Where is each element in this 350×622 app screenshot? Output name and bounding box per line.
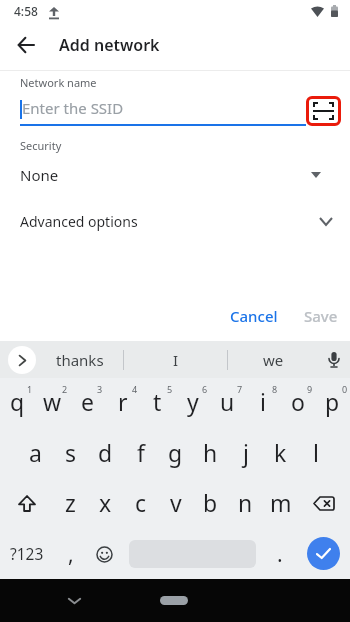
staticText: k	[274, 437, 287, 468]
button[interactable]	[160, 596, 188, 605]
staticText: None	[20, 165, 59, 185]
staticText: Advanced options	[20, 212, 138, 231]
button[interactable]: s	[53, 428, 88, 478]
button[interactable]: i	[245, 378, 280, 428]
staticText: h	[203, 437, 218, 468]
button[interactable]: r	[105, 378, 140, 428]
staticText: e	[81, 386, 94, 417]
staticText: .	[277, 540, 283, 569]
button[interactable]	[297, 528, 350, 579]
button[interactable]: Advanced options	[20, 212, 332, 231]
staticText: f	[137, 437, 145, 468]
button[interactable]	[88, 528, 123, 579]
button[interactable]: b	[193, 478, 228, 528]
button[interactable]: I	[124, 341, 227, 378]
button[interactable]	[10, 29, 42, 61]
button[interactable]	[306, 96, 341, 126]
staticText: 7	[237, 383, 243, 395]
staticText: l	[313, 437, 319, 468]
button[interactable]	[8, 346, 36, 374]
button[interactable]	[318, 341, 350, 378]
staticText: ?123	[10, 543, 44, 564]
staticText: Save	[304, 306, 338, 326]
button[interactable]: z	[53, 478, 88, 528]
button[interactable]: q	[0, 378, 35, 428]
staticText: z	[65, 487, 76, 518]
button[interactable]: g	[158, 428, 193, 478]
staticText: c	[135, 487, 147, 518]
staticText: 6	[202, 383, 208, 395]
button[interactable]: p	[315, 378, 350, 428]
button[interactable]: f	[123, 428, 158, 478]
button[interactable]: j	[228, 428, 263, 478]
button[interactable]: .	[262, 528, 297, 579]
staticText: Network name	[20, 75, 97, 90]
button[interactable]: ,	[53, 528, 88, 579]
staticText: Enter the SSID	[22, 98, 124, 118]
staticText: 4	[132, 383, 138, 395]
button[interactable]: l	[298, 428, 333, 478]
button[interactable]: thanks	[36, 341, 123, 378]
staticText: 3	[97, 383, 103, 395]
staticText: w	[43, 386, 62, 417]
button[interactable]: w	[35, 378, 70, 428]
staticText: j	[243, 437, 249, 468]
staticText: a	[29, 437, 42, 468]
button[interactable]: x	[88, 478, 123, 528]
staticText: m	[270, 487, 292, 518]
staticText: p	[325, 386, 340, 417]
staticText: 1	[27, 383, 33, 395]
staticText: 4:58	[14, 3, 38, 19]
staticText: d	[98, 437, 113, 468]
button[interactable]	[123, 528, 262, 579]
button[interactable]: Cancel	[230, 306, 278, 326]
button[interactable]: t	[140, 378, 175, 428]
button[interactable]: we	[228, 341, 318, 378]
staticText: Add network	[59, 34, 160, 56]
staticText: 9	[307, 383, 313, 395]
staticText: i	[260, 386, 266, 417]
staticText: s	[65, 437, 77, 468]
staticText: b	[203, 487, 218, 518]
staticText: q	[10, 386, 25, 417]
button[interactable]: u	[210, 378, 245, 428]
button[interactable]: e	[70, 378, 105, 428]
button[interactable]: n	[228, 478, 263, 528]
button[interactable]	[298, 478, 350, 528]
button[interactable]: d	[88, 428, 123, 478]
staticText: 5	[167, 383, 173, 395]
staticText: u	[220, 386, 235, 417]
button[interactable]: v	[158, 478, 193, 528]
staticText: o	[291, 386, 305, 417]
staticText: we	[263, 350, 284, 370]
staticText: 0	[342, 383, 348, 395]
button[interactable]: y	[175, 378, 210, 428]
button[interactable]: h	[193, 428, 228, 478]
staticText: thanks	[56, 350, 104, 370]
staticText: Cancel	[230, 306, 278, 326]
button[interactable]: k	[263, 428, 298, 478]
staticText: x	[99, 487, 112, 518]
staticText: y	[187, 386, 199, 417]
staticText: n	[238, 487, 253, 518]
button[interactable]: c	[123, 478, 158, 528]
staticText: I	[173, 350, 179, 370]
staticText: t	[153, 386, 162, 417]
button[interactable]: o	[280, 378, 315, 428]
staticText: g	[168, 437, 183, 468]
button[interactable]: None	[20, 165, 330, 185]
button[interactable]: a	[18, 428, 53, 478]
button[interactable]	[62, 589, 86, 613]
staticText: r	[118, 386, 128, 417]
button[interactable]: m	[263, 478, 298, 528]
button[interactable]	[0, 478, 53, 528]
staticText: 2	[62, 383, 68, 395]
button[interactable]: Save	[304, 306, 338, 326]
staticText: 8	[272, 383, 278, 395]
staticText: v	[170, 487, 182, 518]
button[interactable]: ?123	[0, 528, 53, 579]
staticText: Security	[20, 138, 62, 153]
staticText: ,	[68, 540, 74, 569]
